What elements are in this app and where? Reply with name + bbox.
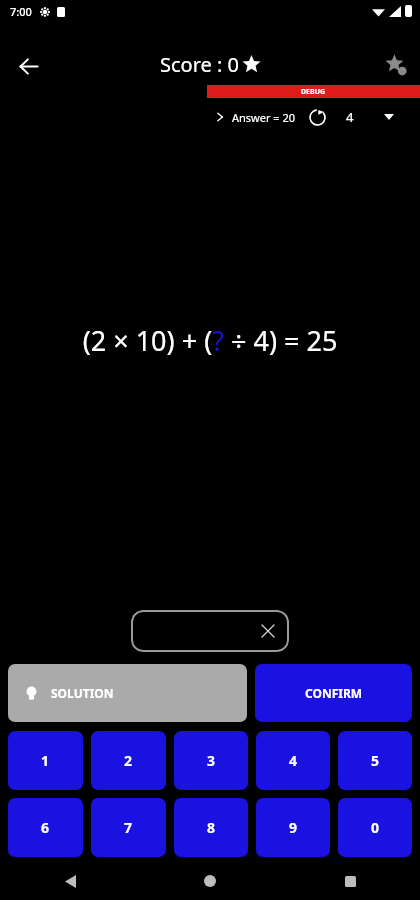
staticText: 9 — [289, 818, 298, 837]
staticText: 7 — [124, 818, 133, 837]
staticText: 1 — [41, 751, 50, 770]
button[interactable]: Clear — [253, 616, 283, 646]
button[interactable]: Refresh — [305, 105, 329, 129]
staticText: 5 — [371, 751, 380, 770]
button[interactable]: Home — [192, 863, 228, 899]
button[interactable]: 4 — [256, 731, 330, 790]
button[interactable]: Favorites — [375, 44, 417, 86]
button[interactable]: Back — [6, 44, 50, 88]
button[interactable]: Back — [52, 863, 88, 899]
staticText: SOLUTION — [51, 685, 114, 701]
staticText: 2 — [124, 751, 133, 770]
staticText: 0 — [371, 818, 380, 837]
button[interactable]: 0 — [338, 798, 412, 857]
button[interactable]: 1 — [8, 731, 83, 790]
staticText: 7:00 — [10, 4, 32, 19]
staticText: 3 — [207, 751, 216, 770]
button[interactable]: Recents — [332, 863, 368, 899]
button[interactable]: SOLUTION — [8, 664, 247, 722]
button[interactable]: 9 — [256, 798, 330, 857]
staticText: CONFIRM — [305, 685, 363, 701]
staticText: (2 × 10) + (? ÷ 4) = 25 — [0, 322, 420, 359]
staticText: DEBUG — [301, 87, 326, 97]
staticText: 4 — [289, 751, 298, 770]
staticText: 6 — [41, 818, 50, 837]
button[interactable]: CONFIRM — [255, 664, 412, 722]
staticText: Answer = 20 — [232, 110, 296, 125]
button[interactable]: 6 — [8, 798, 83, 857]
button[interactable]: Answer input — [131, 610, 289, 652]
button[interactable]: 3 — [174, 731, 248, 790]
button[interactable]: Select level — [378, 106, 400, 128]
button[interactable]: 5 — [338, 731, 412, 790]
staticText: 8 — [207, 818, 216, 837]
staticText: 4 — [346, 108, 354, 126]
button[interactable]: 8 — [174, 798, 248, 857]
button[interactable]: 7 — [91, 798, 166, 857]
staticText: Score : 0 — [160, 51, 240, 78]
button[interactable]: 2 — [91, 731, 166, 790]
